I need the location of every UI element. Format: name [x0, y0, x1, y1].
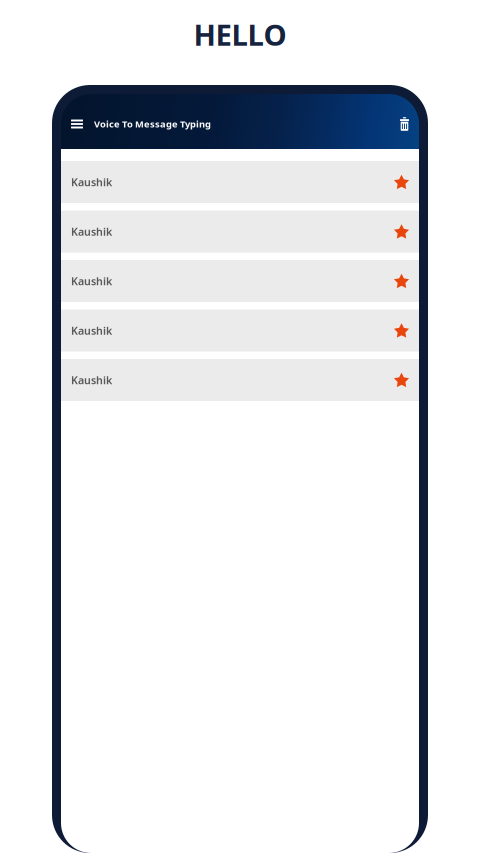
button[interactable]: Menu [66, 112, 88, 135]
staticText: Kaushik [71, 323, 112, 338]
staticText: HELLO [193, 15, 286, 54]
staticText: Kaushik [71, 224, 112, 239]
button[interactable]: Kaushik [61, 260, 419, 302]
button[interactable]: Kaushik [61, 359, 419, 401]
button[interactable]: Delete [395, 112, 414, 136]
staticText: Voice To Message Typing [94, 118, 211, 130]
button[interactable]: Kaushik [61, 309, 419, 351]
button[interactable]: Kaushik [61, 161, 419, 203]
button[interactable]: Kaushik [61, 210, 419, 252]
staticText: Kaushik [71, 175, 112, 189]
staticText: Kaushik [71, 274, 112, 288]
staticText: Kaushik [71, 373, 112, 387]
